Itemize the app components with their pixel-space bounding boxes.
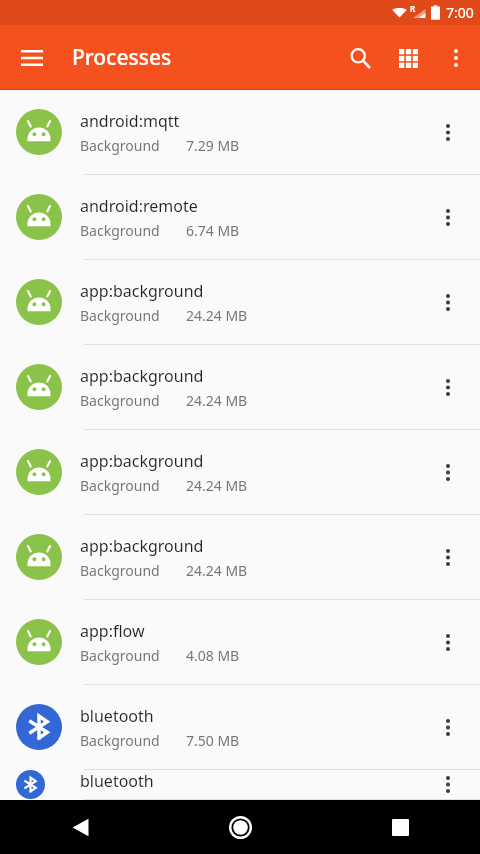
button[interactable]: Grid view [384,34,432,82]
staticText: 4.08 MB [186,646,240,665]
staticText: 6.74 MB [186,221,240,240]
staticText: android:mqtt [80,110,180,132]
staticText: 24.24 MB [186,476,248,495]
staticText: 24.24 MB [186,391,248,410]
staticText: 7:00 [446,3,474,22]
button[interactable]: Back [0,800,160,854]
button[interactable]: More options for app:background [424,363,472,411]
staticText: Background [80,731,160,750]
staticText: app:background [80,365,204,387]
staticText: Background [80,221,160,240]
button[interactable]: app:background [0,515,480,600]
staticText: app:flow [80,620,145,642]
button[interactable]: app:background [0,345,480,430]
button[interactable]: Home [160,800,320,854]
button[interactable]: More options for app:background [424,278,472,326]
button[interactable]: More options for app:background [424,533,472,581]
staticText: Background [80,646,160,665]
button[interactable]: app:flow [0,600,480,685]
button[interactable]: Recent apps [320,800,480,854]
staticText: bluetooth [80,770,154,792]
button[interactable]: bluetooth [0,685,480,770]
staticText: Background [80,136,160,155]
staticText: Background [80,391,160,410]
staticText: Background [80,476,160,495]
button[interactable]: android:mqtt [0,90,480,175]
button[interactable]: More options [432,34,480,82]
button[interactable]: android:remote [0,175,480,260]
staticText: Background [80,561,160,580]
staticText: 24.24 MB [186,306,248,325]
button[interactable]: More options for android:remote [424,193,472,241]
button[interactable]: Search [336,34,384,82]
button[interactable]: More options for bluetooth [424,703,472,751]
button[interactable]: More options for bluetooth [424,770,472,799]
button[interactable]: More options for android:mqtt [424,108,472,156]
staticText: 7.29 MB [186,136,240,155]
staticText: Processes [72,43,172,72]
staticText: 24.24 MB [186,561,248,580]
staticText: app:background [80,450,204,472]
button[interactable]: More options for app:flow [424,618,472,666]
button[interactable]: Open navigation menu [8,34,56,82]
button[interactable]: app:background [0,260,480,345]
staticText: android:remote [80,195,198,217]
staticText: app:background [80,280,204,302]
button[interactable]: app:background [0,430,480,515]
staticText: 7.50 MB [186,731,240,750]
staticText: app:background [80,535,204,557]
button[interactable]: More options for app:background [424,448,472,496]
staticText: bluetooth [80,705,154,727]
staticText: Background [80,306,160,325]
button[interactable]: bluetooth [0,770,480,800]
staticText: R [410,3,416,14]
